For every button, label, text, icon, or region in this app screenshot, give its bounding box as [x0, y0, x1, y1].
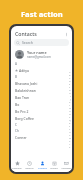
staticText: Fast action	[21, 9, 63, 19]
button[interactable]: Alphabet index	[69, 71, 71, 149]
staticText: C	[69, 77, 71, 80]
staticText: Groups	[50, 167, 58, 170]
button[interactable]: More options	[63, 31, 69, 37]
staticText: K	[69, 101, 71, 104]
staticText: J	[70, 98, 71, 101]
staticText: U	[69, 131, 71, 134]
button[interactable]: Messages	[60, 159, 72, 172]
button[interactable]: Bao Tran	[11, 94, 72, 101]
staticText: V	[69, 134, 71, 137]
button[interactable]: Aditya	[11, 67, 72, 74]
button[interactable]: Groups	[48, 159, 60, 172]
staticText: Z	[69, 146, 71, 149]
staticText: Ch	[15, 129, 19, 133]
staticText: Bhavana Joshi	[15, 81, 38, 86]
button[interactable]: Your name	[11, 49, 72, 60]
staticText: T	[69, 128, 71, 131]
button[interactable]: Borg Coffee	[11, 115, 72, 122]
staticText: O	[69, 113, 71, 116]
button[interactable]: Contacts	[36, 159, 48, 172]
staticText: name@gmail.com	[27, 55, 51, 59]
staticText: Q	[69, 119, 71, 122]
staticText: B	[69, 74, 71, 77]
staticText: F	[69, 86, 71, 89]
staticText: Borg Coffee	[15, 116, 34, 121]
button[interactable]: Favorites	[11, 159, 23, 172]
staticText: X	[69, 140, 71, 143]
button[interactable]: Balakrishnan	[11, 87, 72, 94]
button[interactable]: Bo Pro 2	[11, 108, 72, 115]
staticText: Your name	[27, 50, 47, 55]
staticText: A	[69, 71, 71, 74]
staticText: C	[15, 123, 17, 127]
button[interactable]: Bo	[11, 101, 72, 108]
staticText: B	[15, 75, 17, 79]
staticText: E	[69, 83, 71, 86]
staticText: Favorites	[12, 167, 22, 170]
staticText: H	[69, 92, 71, 95]
staticText: Conner	[15, 135, 27, 140]
staticText: Messages	[61, 167, 72, 170]
staticText: Y	[69, 143, 71, 146]
staticText: Bao Tran	[15, 95, 30, 100]
staticText: Search	[22, 40, 33, 45]
button[interactable]: Search	[14, 39, 69, 46]
staticText: P	[69, 116, 71, 119]
staticText: A	[15, 62, 17, 66]
button[interactable]: Bhavana Joshi	[11, 80, 72, 87]
staticText: G	[69, 89, 71, 92]
staticText: R	[69, 122, 71, 125]
button[interactable]: Recents	[23, 159, 35, 172]
staticText: Contacts	[38, 167, 47, 170]
staticText: Bo Pro 2	[15, 109, 29, 114]
staticText: D	[69, 80, 71, 83]
staticText: S	[69, 125, 71, 128]
staticText: W	[69, 137, 71, 140]
staticText: L	[69, 104, 71, 107]
button[interactable]: Conner	[11, 134, 72, 141]
staticText: M	[69, 107, 71, 110]
staticText: Recents	[25, 167, 34, 170]
staticText: N	[69, 110, 71, 113]
staticText: Bo	[15, 102, 20, 107]
staticText: Aditya	[19, 68, 29, 73]
staticText: Contacts	[15, 30, 37, 37]
staticText: Balakrishnan	[15, 88, 36, 93]
staticText: I	[70, 95, 71, 98]
